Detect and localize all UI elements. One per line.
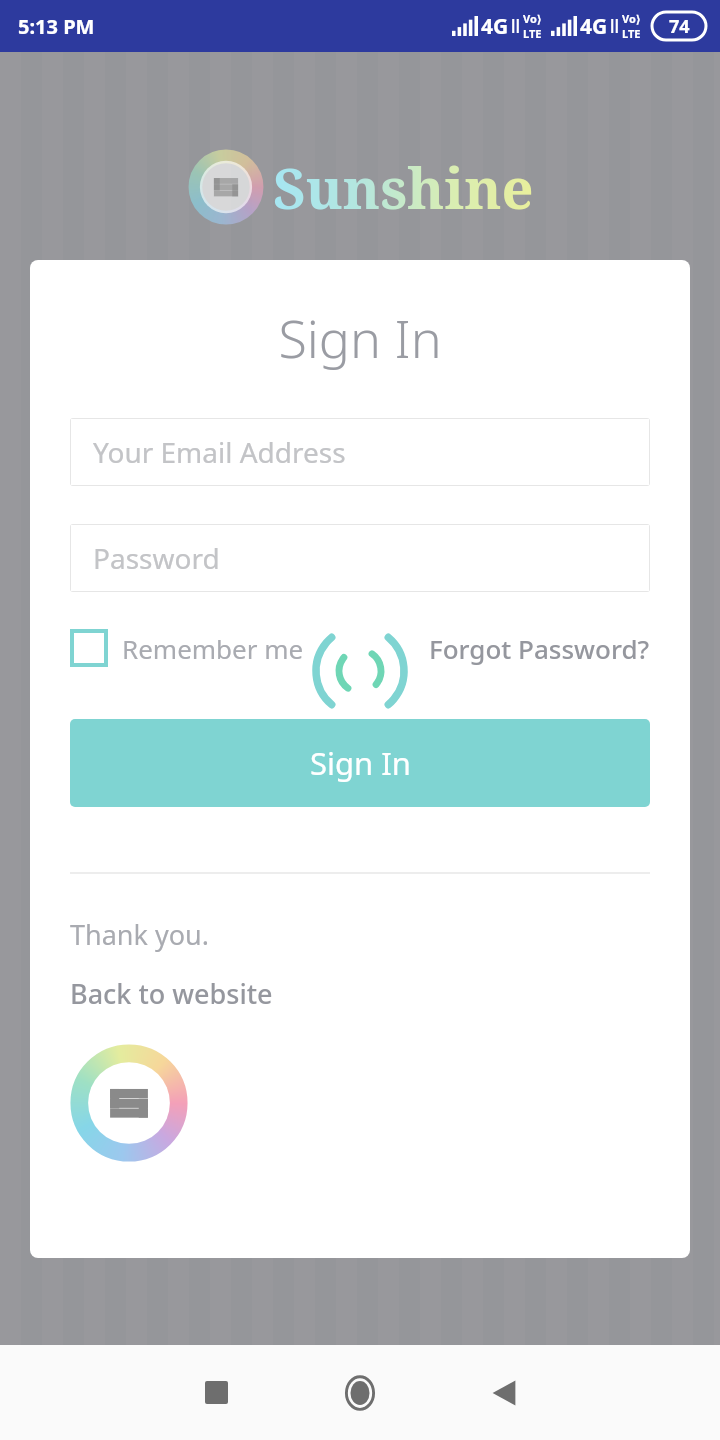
staticText: Thank you.	[70, 916, 209, 953]
staticText: Sign In	[310, 742, 411, 784]
staticText: LTE	[523, 26, 542, 41]
button[interactable]: Your Email Address	[71, 419, 649, 485]
button[interactable]: Forgot Password?	[429, 631, 650, 666]
button[interactable]: Sign In	[70, 719, 650, 807]
button[interactable]: Remember me	[70, 629, 304, 667]
staticText: Sign In	[30, 302, 690, 373]
staticText: Remember me	[122, 631, 304, 666]
staticText: 4G	[580, 12, 608, 41]
button[interactable]: Password	[71, 525, 649, 591]
staticText: 74	[669, 14, 690, 39]
staticText: Vo⟩	[523, 11, 542, 26]
staticText: Back to website	[70, 975, 273, 1012]
staticText: Forgot Password?	[429, 631, 650, 666]
staticText: Sunshine	[273, 149, 534, 225]
staticText: Your Email Address	[93, 433, 346, 471]
button[interactable]: Back to website	[70, 975, 273, 1012]
button[interactable]: Back	[456, 1345, 552, 1440]
button[interactable]: Home	[312, 1345, 408, 1440]
staticText: Vo⟩	[622, 11, 641, 26]
staticText: Password	[93, 539, 220, 577]
staticText: 5:13 PM	[18, 13, 95, 40]
staticText: LTE	[622, 26, 641, 41]
button[interactable]: Recent apps	[168, 1345, 264, 1440]
staticText: 4G	[481, 12, 509, 41]
